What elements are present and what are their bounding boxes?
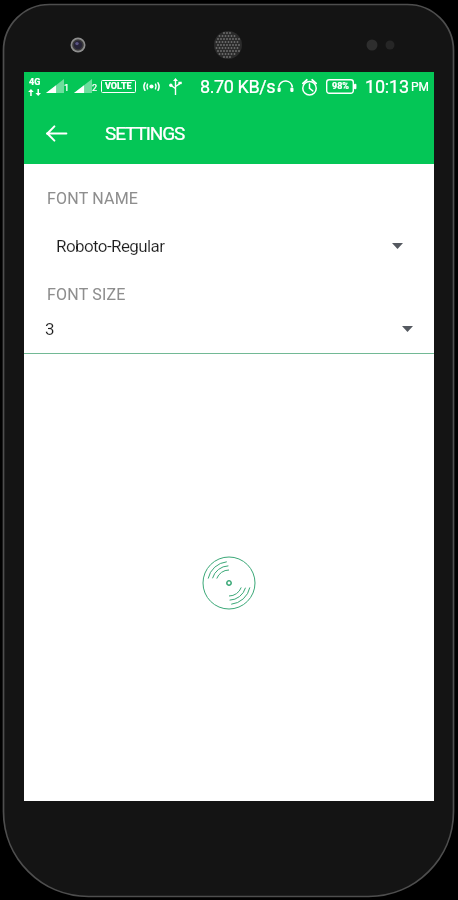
staticText: 1 [64,83,70,94]
staticText: 2 [92,83,98,94]
staticText: 10:13 [365,76,409,97]
staticText: Roboto-Regular [56,236,165,256]
staticText: 8.70 KB/s [200,76,276,97]
button[interactable]: Back [33,110,79,156]
staticText: 3 [45,319,54,339]
staticText: PM [411,80,430,94]
button[interactable]: Roboto-Regular [24,229,434,263]
button[interactable]: 3 [24,312,434,346]
staticText: 98% [332,81,349,92]
staticText: VOLTE [105,81,132,92]
staticText: SETTINGS [105,122,185,144]
staticText: FONT NAME [47,189,139,208]
staticText: FONT SIZE [47,285,126,304]
staticText: 4G [29,77,41,88]
